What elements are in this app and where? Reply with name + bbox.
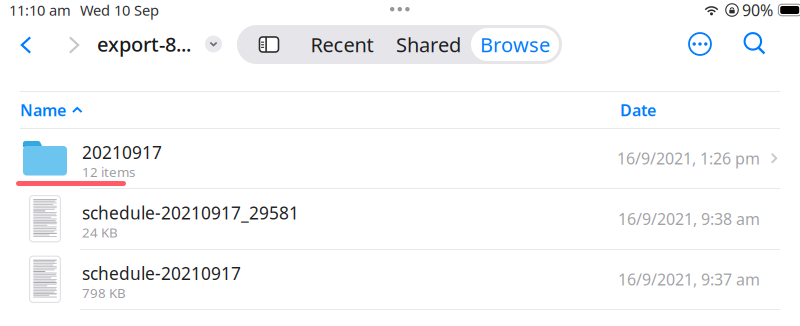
button[interactable]: schedule-20210917_29581 xyxy=(0,188,800,249)
button[interactable]: Search xyxy=(744,32,766,55)
staticText: 90% xyxy=(742,0,773,21)
button[interactable]: schedule-20210917 xyxy=(0,249,800,309)
staticText: 16/9/2021, 9:37 am xyxy=(618,269,760,290)
staticText: Shared xyxy=(396,31,461,58)
staticText: Browse xyxy=(480,31,550,58)
staticText: Recent xyxy=(310,31,373,58)
button[interactable]: Name xyxy=(20,92,82,128)
staticText: 12 items xyxy=(82,163,135,181)
staticText: 20210917 xyxy=(82,141,162,164)
staticText: 24 KB xyxy=(82,223,118,241)
staticText: Date xyxy=(620,99,656,121)
button[interactable]: Browse xyxy=(471,28,559,61)
staticText: export-8... xyxy=(97,31,191,57)
button[interactable]: Recent xyxy=(298,28,386,61)
button[interactable]: Shared xyxy=(386,28,471,61)
staticText: Wed 10 Sep xyxy=(80,0,159,20)
button[interactable]: Forward xyxy=(64,35,84,55)
button[interactable]: Date xyxy=(620,92,656,128)
button[interactable]: More options xyxy=(688,32,712,56)
button[interactable]: export-8... xyxy=(97,31,227,57)
staticText: 11:10 am xyxy=(9,0,71,20)
staticText: 16/9/2021, 1:26 pm xyxy=(617,148,760,169)
button[interactable]: 20210917 xyxy=(0,128,800,188)
button[interactable]: Show sidebar xyxy=(240,28,298,61)
staticText: schedule-20210917 xyxy=(82,262,241,285)
staticText: schedule-20210917_29581 xyxy=(82,201,299,224)
staticText: Name xyxy=(20,99,66,121)
button[interactable]: Back xyxy=(16,35,36,55)
staticText: 16/9/2021, 9:38 am xyxy=(618,208,760,229)
staticText: 798 KB xyxy=(82,284,126,302)
